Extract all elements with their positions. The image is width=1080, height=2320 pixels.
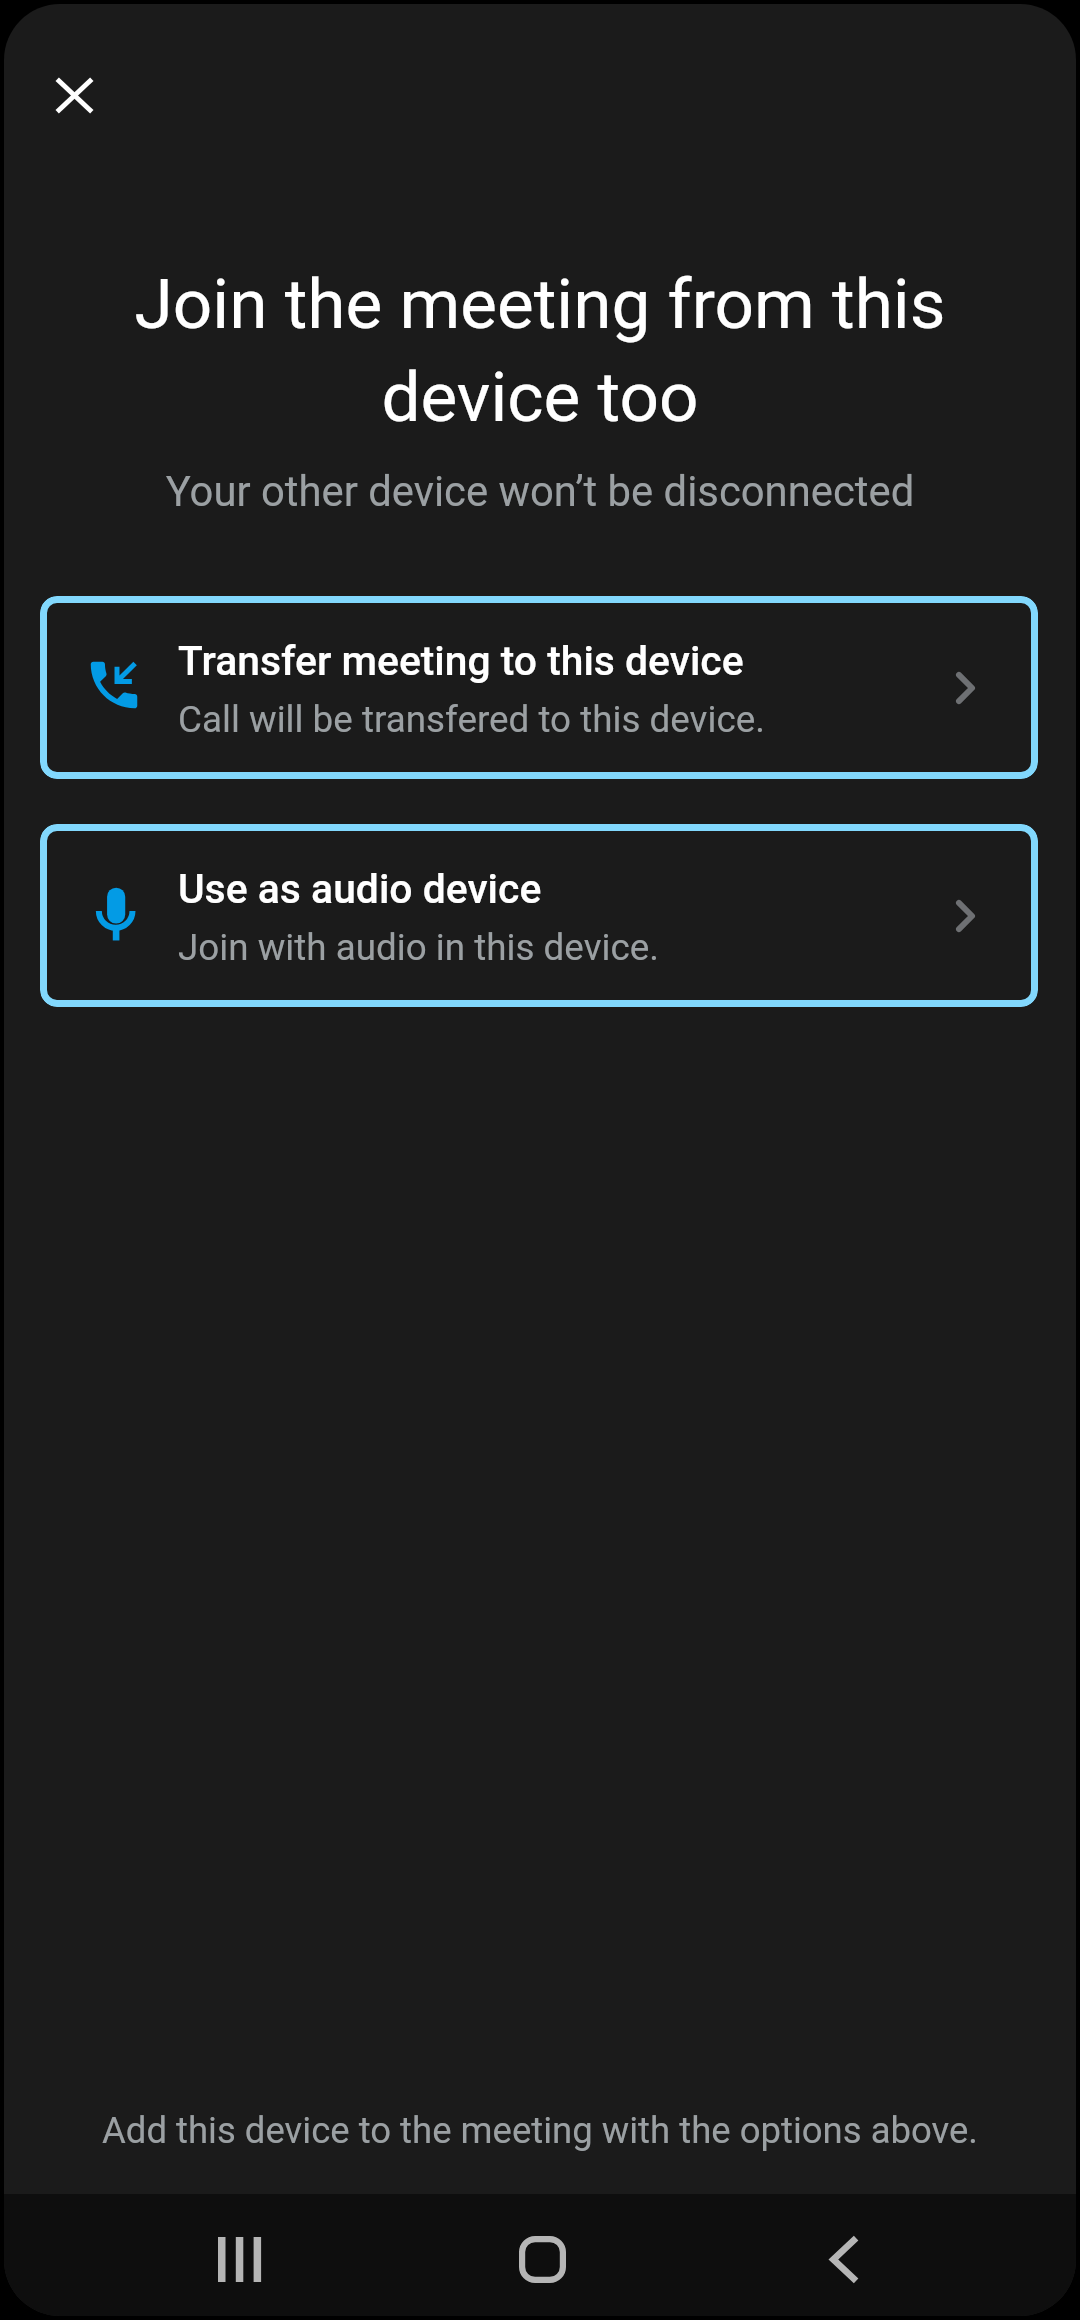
- button[interactable]: Use as audio device: [40, 824, 1038, 1007]
- button[interactable]: Home: [482, 2194, 602, 2316]
- staticText: Call will be transfered to this device.: [178, 698, 765, 741]
- button[interactable]: Back: [783, 2194, 903, 2316]
- staticText: Join with audio in this device.: [178, 926, 659, 969]
- button[interactable]: Close: [28, 49, 120, 141]
- staticText: Transfer meeting to this device: [178, 637, 744, 685]
- staticText: Join the meeting from this device too: [62, 264, 1018, 438]
- staticText: Add this device to the meeting with the …: [4, 2109, 1076, 2152]
- button[interactable]: Recent apps: [179, 2194, 299, 2316]
- button[interactable]: Transfer meeting to this device: [40, 596, 1038, 779]
- staticText: Use as audio device: [178, 865, 542, 913]
- staticText: Your other device won’t be disconnected: [4, 467, 1076, 516]
